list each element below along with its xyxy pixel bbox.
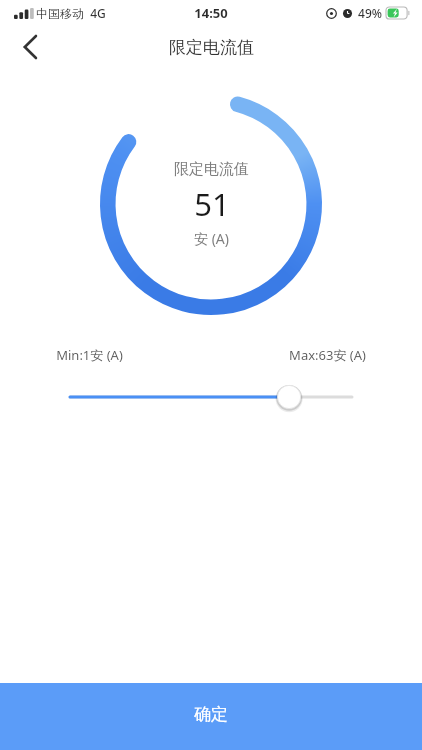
staticText: 中国移动 [36, 6, 84, 21]
staticText: 安 (A) [194, 229, 229, 248]
staticText: 51 [194, 183, 230, 225]
button[interactable]: 确定 [0, 683, 422, 750]
staticText: Max:63安 (A) [289, 346, 366, 364]
staticText: 限定电流值 [169, 37, 254, 58]
button[interactable]: Back [8, 26, 52, 68]
staticText: Min:1安 (A) [56, 346, 123, 364]
button[interactable]: Current limit slider [0, 382, 422, 412]
staticText: 49% [358, 5, 382, 21]
staticText: 确定 [194, 704, 228, 725]
staticText: 限定电流值 [174, 160, 249, 179]
staticText: 4G [90, 5, 106, 21]
staticText: 14:50 [194, 4, 228, 22]
